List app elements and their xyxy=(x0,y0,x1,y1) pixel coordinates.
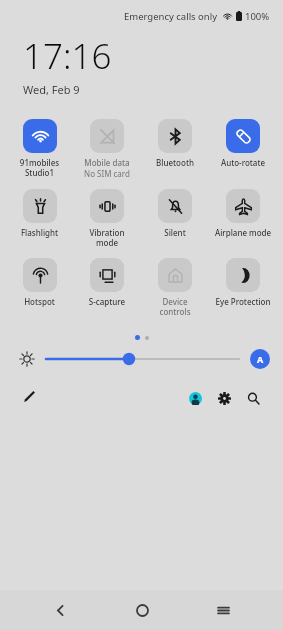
button[interactable]: Edit xyxy=(17,384,41,408)
staticText: Bluetooth xyxy=(141,157,209,168)
staticText: Auto-rotate xyxy=(209,157,277,168)
button[interactable]: Auto brightness xyxy=(250,349,270,369)
button[interactable]: Silent xyxy=(141,189,209,238)
button[interactable]: Back xyxy=(38,590,82,630)
button[interactable]: Airplane mode xyxy=(209,189,277,238)
button[interactable]: Auto-rotate xyxy=(209,119,277,168)
button[interactable]: Search xyxy=(241,386,265,410)
other: Brightness xyxy=(19,351,35,367)
staticText: Device controls xyxy=(141,296,209,317)
button[interactable]: Home xyxy=(120,590,164,630)
staticText: No SIM card xyxy=(73,168,141,179)
staticText: 100% xyxy=(245,10,270,23)
staticText: Eye Protection xyxy=(209,296,277,307)
button[interactable]: Eye Protection xyxy=(209,258,277,307)
button[interactable] xyxy=(46,348,239,370)
button[interactable]: Mobile data xyxy=(73,119,141,179)
staticText: Silent xyxy=(141,227,209,238)
staticText: Hotspot xyxy=(6,296,73,307)
staticText: 17:16 xyxy=(23,32,112,80)
button[interactable]: Vibration mode xyxy=(73,189,141,248)
staticText: Wed, Feb 9 xyxy=(23,82,80,97)
staticText: Mobile data xyxy=(73,157,141,168)
button[interactable]: Settings xyxy=(212,386,236,410)
button[interactable]: Account xyxy=(183,386,207,410)
staticText: Airplane mode xyxy=(209,227,277,238)
staticText: 91mobiles Studio1 xyxy=(6,157,73,178)
button[interactable]: Hotspot xyxy=(6,258,73,307)
button[interactable]: 91mobiles Studio1 xyxy=(6,119,73,178)
button[interactable]: S-capture xyxy=(73,258,141,307)
button[interactable]: Device controls xyxy=(141,258,209,317)
staticText: S-capture xyxy=(73,296,141,307)
button[interactable]: Recents xyxy=(201,590,245,630)
button[interactable]: Flashlight xyxy=(6,189,73,238)
staticText: Emergency calls only xyxy=(124,10,218,23)
staticText: Flashlight xyxy=(6,227,73,238)
staticText: Vibration mode xyxy=(73,227,141,248)
button[interactable]: Bluetooth xyxy=(141,119,209,168)
staticText: A xyxy=(257,353,264,365)
